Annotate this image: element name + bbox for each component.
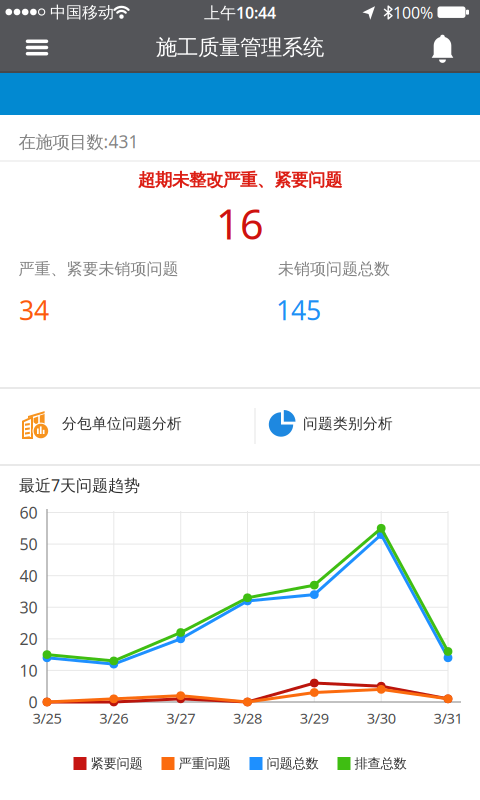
staticText: 3/25 (32, 708, 61, 728)
staticText: 0 (28, 691, 37, 713)
staticText: 3/31 (433, 708, 462, 728)
staticText: 20 (19, 628, 37, 649)
staticText: 问题总数 (266, 755, 318, 772)
staticText: 34 (19, 292, 49, 328)
staticText: 10 (19, 660, 37, 681)
button[interactable]: 问题类别分析 (256, 386, 480, 461)
staticText: 问题类别分析 (303, 414, 393, 432)
button[interactable]: 分包单位问题分析 (0, 386, 254, 461)
staticText: 严重问题 (178, 755, 230, 772)
staticText: 3/29 (300, 708, 329, 728)
staticText: 50 (19, 533, 37, 555)
staticText: 上午10:44 (204, 2, 276, 23)
staticText: 40 (19, 565, 37, 586)
staticText: 60 (19, 502, 37, 523)
staticText: 145 (276, 292, 321, 328)
staticText: 3/26 (99, 708, 128, 728)
staticText: 3/28 (233, 708, 262, 728)
staticText: 超期未整改严重、紧要问题 (138, 169, 342, 191)
staticText: 16 (216, 196, 264, 251)
staticText: 最近7天问题趋势 (19, 474, 140, 496)
staticText: 紧要问题 (90, 755, 142, 772)
button[interactable]: Menu (15, 25, 59, 69)
staticText: 3/30 (367, 708, 396, 728)
staticText: 严重、紧要未销项问题 (18, 259, 178, 279)
staticText: 施工质量管理系统 (156, 34, 324, 61)
staticText: 中国移动 (50, 3, 114, 22)
button[interactable]: Notifications (420, 24, 464, 68)
staticText: 未销项问题总数 (278, 259, 390, 279)
staticText: 排查总数 (354, 755, 406, 772)
staticText: 3/27 (166, 708, 195, 728)
staticText: 分包单位问题分析 (62, 414, 182, 432)
staticText: 100% (393, 2, 433, 23)
staticText: 在施项目数:431 (18, 130, 138, 153)
staticText: 30 (19, 597, 37, 618)
